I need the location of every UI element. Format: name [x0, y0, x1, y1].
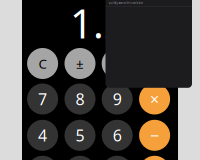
- button[interactable]: +: [139, 156, 170, 160]
- staticText: 5: [75, 125, 84, 146]
- staticText: quickly access this website: [108, 1, 143, 5]
- staticText: C: [39, 55, 47, 72]
- button[interactable]: 4: [27, 120, 58, 151]
- button[interactable]: 5: [64, 120, 95, 151]
- button[interactable]: −: [139, 120, 170, 151]
- button[interactable]: 6: [102, 120, 133, 151]
- button[interactable]: 3: [102, 156, 133, 160]
- button[interactable]: 1: [27, 156, 58, 160]
- button[interactable]: ×: [139, 83, 170, 114]
- button[interactable]: 7: [27, 83, 58, 114]
- button[interactable]: ±: [64, 48, 95, 79]
- staticText: ×: [150, 88, 159, 110]
- staticText: −: [150, 125, 159, 146]
- button[interactable]: 9: [102, 83, 133, 114]
- staticText: 8: [75, 88, 84, 110]
- button[interactable]: C: [27, 48, 58, 79]
- staticText: 6: [113, 125, 122, 146]
- button[interactable]: 8: [64, 83, 95, 114]
- staticText: 7: [38, 88, 47, 110]
- staticText: 1.24: [70, 0, 150, 49]
- button[interactable]: 2: [64, 156, 95, 160]
- staticText: 4: [38, 125, 47, 146]
- button[interactable]: %: [102, 48, 133, 79]
- staticText: 9: [113, 88, 122, 110]
- staticText: ±: [76, 55, 84, 72]
